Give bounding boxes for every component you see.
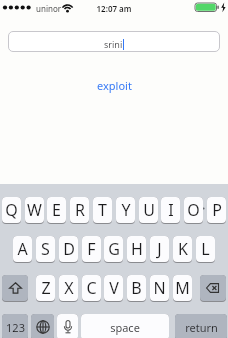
staticText: return (185, 320, 218, 335)
button[interactable]: V (104, 275, 123, 302)
button[interactable]: return (175, 314, 227, 338)
staticText: O (187, 199, 200, 221)
button[interactable]: U (139, 197, 158, 224)
staticText: H (131, 238, 143, 260)
button[interactable]: M (173, 275, 192, 302)
staticText: M (175, 277, 190, 299)
button[interactable]: F (82, 236, 101, 263)
button[interactable]: S (36, 236, 55, 263)
staticText: V (109, 277, 119, 299)
button[interactable] (31, 314, 54, 338)
button[interactable]: B (127, 275, 146, 302)
staticText: F (87, 238, 96, 260)
staticText: Z (41, 277, 51, 299)
staticText: R (75, 199, 85, 221)
staticText: X (64, 277, 74, 299)
staticText: uninor (36, 3, 62, 14)
button[interactable]: Q (2, 197, 21, 224)
staticText: 123 (6, 320, 25, 335)
button[interactable]: exploit (0, 77, 228, 93)
button[interactable] (2, 275, 28, 302)
staticText: W (27, 199, 42, 221)
button[interactable]: T (93, 197, 112, 224)
staticText: E (52, 199, 61, 221)
button[interactable]: W (25, 197, 44, 224)
staticText: J (157, 238, 162, 260)
button[interactable]: D (59, 236, 78, 263)
button[interactable]: H (127, 236, 146, 263)
button[interactable]: J (150, 236, 169, 263)
staticText: I (168, 199, 174, 221)
button[interactable]: N (150, 275, 169, 302)
button[interactable]: Z (36, 275, 55, 302)
staticText: P (212, 199, 222, 221)
button[interactable]: L (196, 236, 215, 263)
button[interactable]: R (70, 197, 89, 224)
staticText: C (86, 277, 97, 299)
staticText: Y (121, 199, 131, 221)
staticText: N (153, 277, 166, 299)
staticText: space (110, 320, 140, 335)
button[interactable]: srini (8, 31, 220, 52)
button[interactable]: P (207, 197, 226, 224)
button[interactable] (57, 314, 78, 338)
button[interactable]: C (82, 275, 101, 302)
staticText: U (143, 199, 155, 221)
staticText: L (201, 238, 210, 260)
staticText: srini (104, 38, 123, 50)
staticText: S (41, 238, 50, 260)
staticText: 12:07 am (0, 3, 228, 14)
staticText: G (108, 238, 120, 260)
button[interactable]: G (104, 236, 123, 263)
button[interactable]: K (173, 236, 192, 263)
button[interactable]: E (47, 197, 66, 224)
button[interactable]: X (59, 275, 78, 302)
staticText: A (17, 238, 28, 260)
button[interactable]: 123 (2, 314, 28, 338)
staticText: T (98, 199, 107, 221)
staticText: exploit (97, 78, 132, 93)
button[interactable]: space (81, 314, 169, 338)
button[interactable] (200, 275, 226, 302)
button[interactable]: Y (116, 197, 135, 224)
button[interactable]: A (13, 236, 32, 263)
button[interactable]: I (161, 197, 180, 224)
staticText: D (63, 238, 75, 260)
button[interactable]: O (184, 197, 203, 224)
staticText: B (131, 277, 142, 299)
staticText: K (178, 238, 188, 260)
staticText: Q (5, 199, 18, 221)
